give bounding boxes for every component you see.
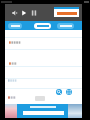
button[interactable]: Search — [56, 89, 62, 95]
button[interactable] — [54, 7, 79, 17]
button[interactable] — [8, 23, 22, 29]
button[interactable] — [5, 104, 82, 118]
button[interactable]: Volume — [12, 10, 18, 16]
button[interactable]: Play — [21, 10, 27, 16]
button[interactable] — [57, 23, 74, 29]
button[interactable] — [34, 23, 51, 29]
button[interactable]: Pause — [31, 10, 37, 16]
button[interactable]: Apps — [66, 89, 72, 95]
